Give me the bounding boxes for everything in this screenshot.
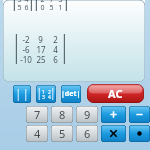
button[interactable]: Determinant — [61, 85, 81, 103]
staticText: 6 — [53, 54, 58, 64]
staticText: -2 — [22, 34, 30, 44]
staticText: 3 — [58, 0, 63, 3]
staticText: 9 — [38, 34, 43, 44]
staticText: 25 — [36, 54, 46, 64]
button[interactable]: 8 — [51, 106, 73, 123]
staticText: 7 — [49, 0, 54, 3]
staticText: -10 — [20, 54, 32, 64]
staticText: 2 — [48, 89, 51, 94]
staticText: 4 — [34, 126, 41, 141]
staticText: -6 — [22, 44, 30, 54]
staticText: 0 — [40, 3, 45, 11]
button[interactable]: 2 by 2 matrix — [36, 85, 56, 103]
staticText: 8 — [59, 107, 66, 122]
button[interactable]: Multiply — [101, 125, 126, 142]
staticText: 2 — [53, 34, 58, 44]
button[interactable]: 5 — [51, 125, 73, 142]
staticText: 7 — [34, 107, 41, 122]
staticText: 4 — [24, 0, 29, 3]
staticText: 5 — [49, 3, 54, 11]
button[interactable]: 9 — [76, 106, 98, 123]
button[interactable]: Dot product — [129, 125, 150, 142]
button[interactable]: 6 — [76, 125, 98, 142]
button[interactable]: AC — [87, 84, 144, 103]
staticText: 6 — [84, 126, 91, 141]
staticText: 17 — [36, 44, 46, 54]
staticText: 9 — [84, 107, 91, 122]
button[interactable]: 4 — [26, 125, 48, 142]
staticText: 5 — [59, 126, 66, 141]
staticText: |det| — [61, 89, 81, 99]
button[interactable]: Plus — [101, 106, 126, 123]
button[interactable]: Minus — [129, 106, 150, 123]
staticText: 6 — [24, 3, 29, 11]
staticText: 4 — [53, 44, 58, 54]
staticText: AC — [108, 86, 123, 101]
staticText: 3 — [42, 94, 45, 99]
staticText: 4 — [48, 94, 51, 99]
staticText: 3 — [17, 0, 22, 3]
button[interactable]: 7 — [26, 106, 48, 123]
button[interactable]: Column matrix — [13, 85, 31, 103]
staticText: 1 — [42, 89, 45, 94]
staticText: 2 — [40, 0, 45, 3]
staticText: 1 — [58, 3, 63, 11]
staticText: 5 — [17, 3, 22, 11]
